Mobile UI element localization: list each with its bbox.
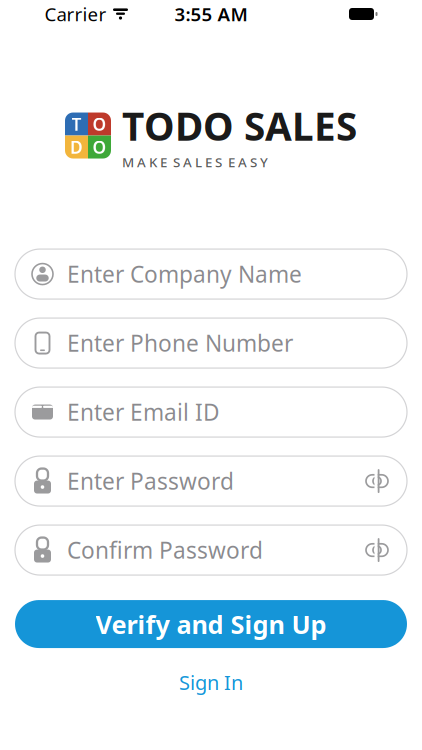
staticText: Sign In [179,669,243,696]
staticText: TODO SALES [122,100,357,151]
staticText: Enter Company Name [67,259,302,289]
staticText: Enter Phone Number [67,328,293,358]
staticText: Carrier [44,2,106,26]
staticText: D [70,135,83,158]
button[interactable]: Verify and Sign Up [15,600,407,648]
button[interactable]: Sign In [159,661,263,704]
button[interactable]: Confirm Password [15,525,407,575]
staticText: Verify and Sign Up [95,607,326,641]
staticText: O [92,112,106,135]
staticText: O [92,135,106,158]
button[interactable]: Enter Company Name [15,249,407,299]
button[interactable]: Enter Phone Number [15,318,407,368]
button[interactable]: Enter Email ID [15,387,407,437]
staticText: Confirm Password [67,535,263,565]
button[interactable]: Enter Password [15,456,407,506]
staticText: 3:55 AM [174,2,247,26]
staticText: M A K E S A L E S E A S Y [122,153,268,171]
staticText: Enter Password [67,466,234,496]
staticText: Enter Email ID [67,397,220,427]
staticText: T [71,112,81,135]
